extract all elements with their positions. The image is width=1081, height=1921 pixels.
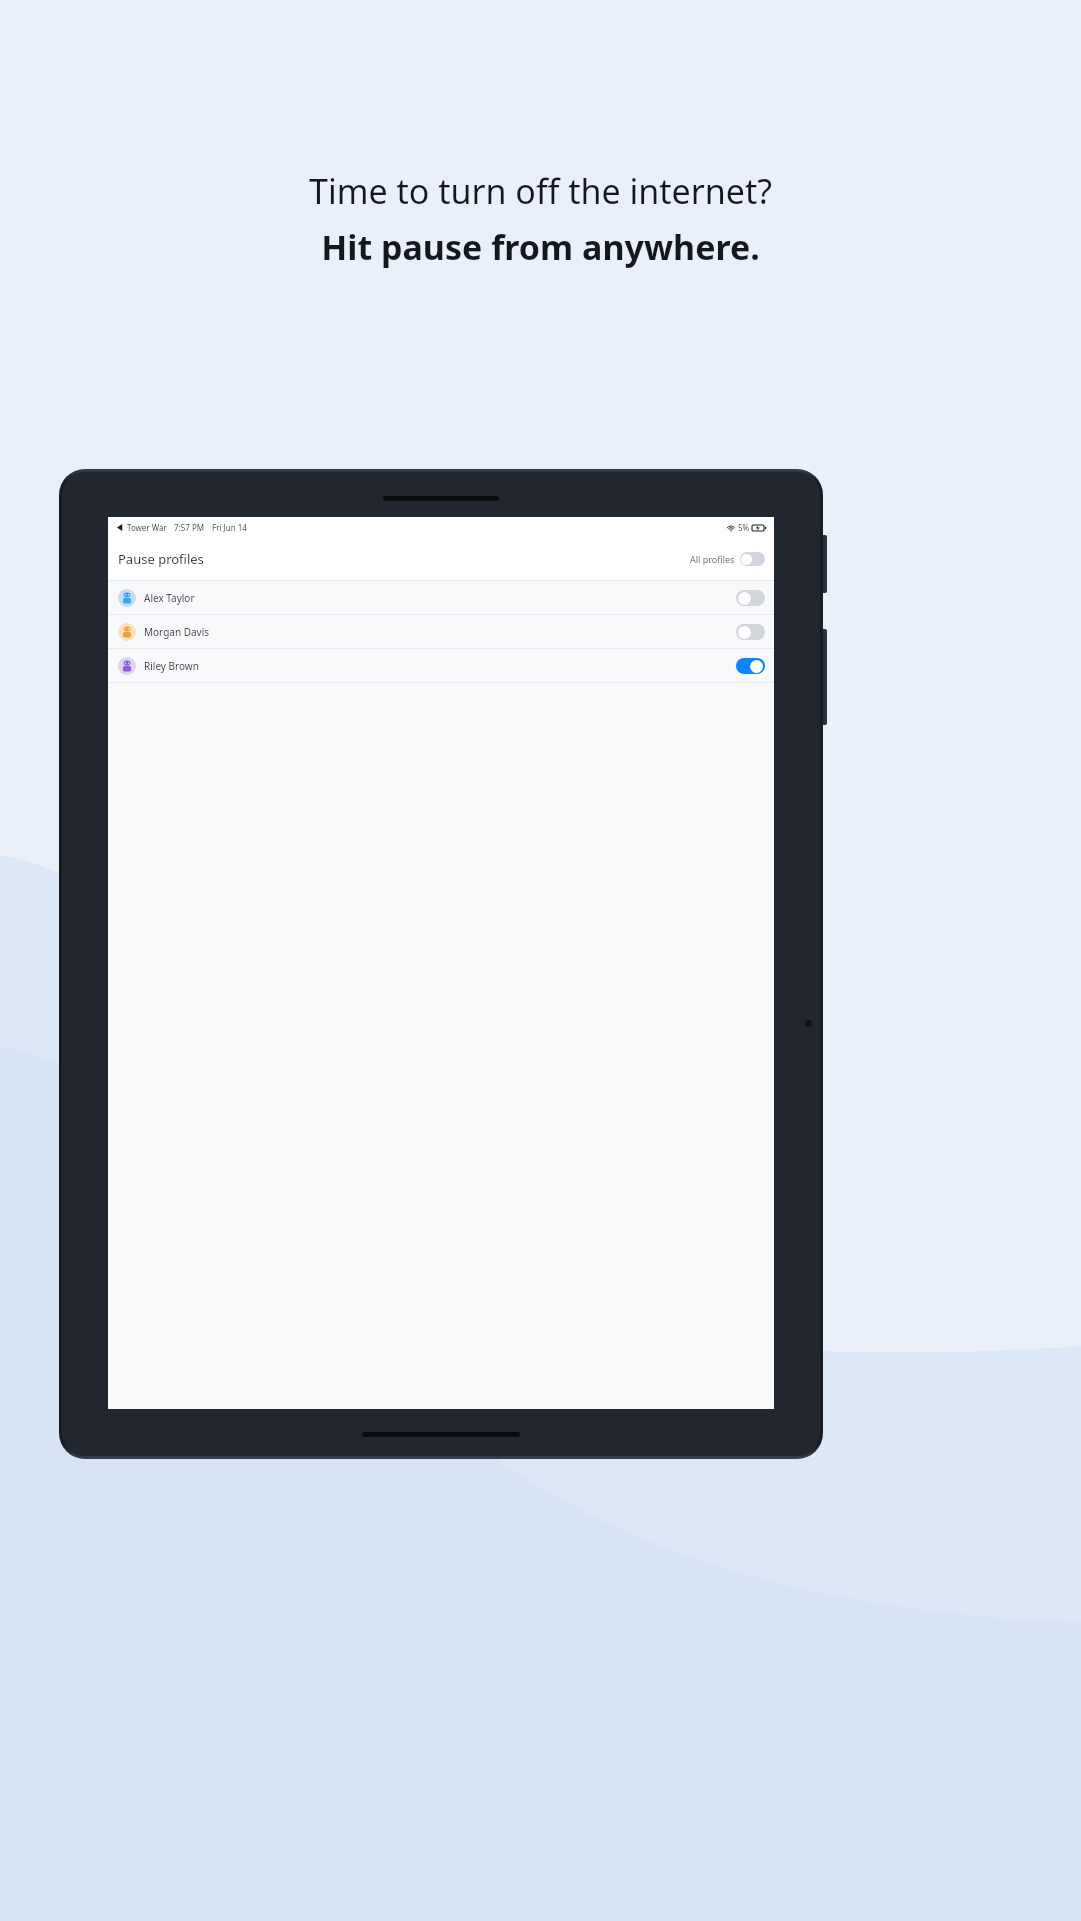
staticText: Fri Jun 14 — [212, 522, 247, 533]
button[interactable]: Toggle off — [736, 624, 765, 640]
staticText: All profiles — [690, 553, 735, 565]
button[interactable]: Toggle off — [736, 590, 765, 606]
button[interactable]: Alex Taylor — [108, 581, 774, 614]
staticText: Hit pause from anywhere. — [321, 224, 760, 270]
staticText: Riley Brown — [144, 659, 199, 673]
button[interactable]: Riley Brown — [108, 649, 774, 682]
staticText: Tower War — [127, 522, 167, 533]
staticText: Alex Taylor — [144, 591, 195, 605]
staticText: Morgan Davis — [144, 625, 210, 639]
button[interactable]: Toggle on — [736, 658, 765, 674]
staticText: Pause profiles — [118, 550, 204, 568]
button[interactable]: All profiles — [690, 552, 765, 566]
button[interactable]: Morgan Davis — [108, 615, 774, 648]
staticText: Time to turn off the internet? — [309, 168, 772, 214]
staticText: 5% — [738, 522, 750, 533]
button[interactable]: Toggle off — [740, 552, 765, 566]
staticText: 7:57 PM — [174, 522, 205, 533]
